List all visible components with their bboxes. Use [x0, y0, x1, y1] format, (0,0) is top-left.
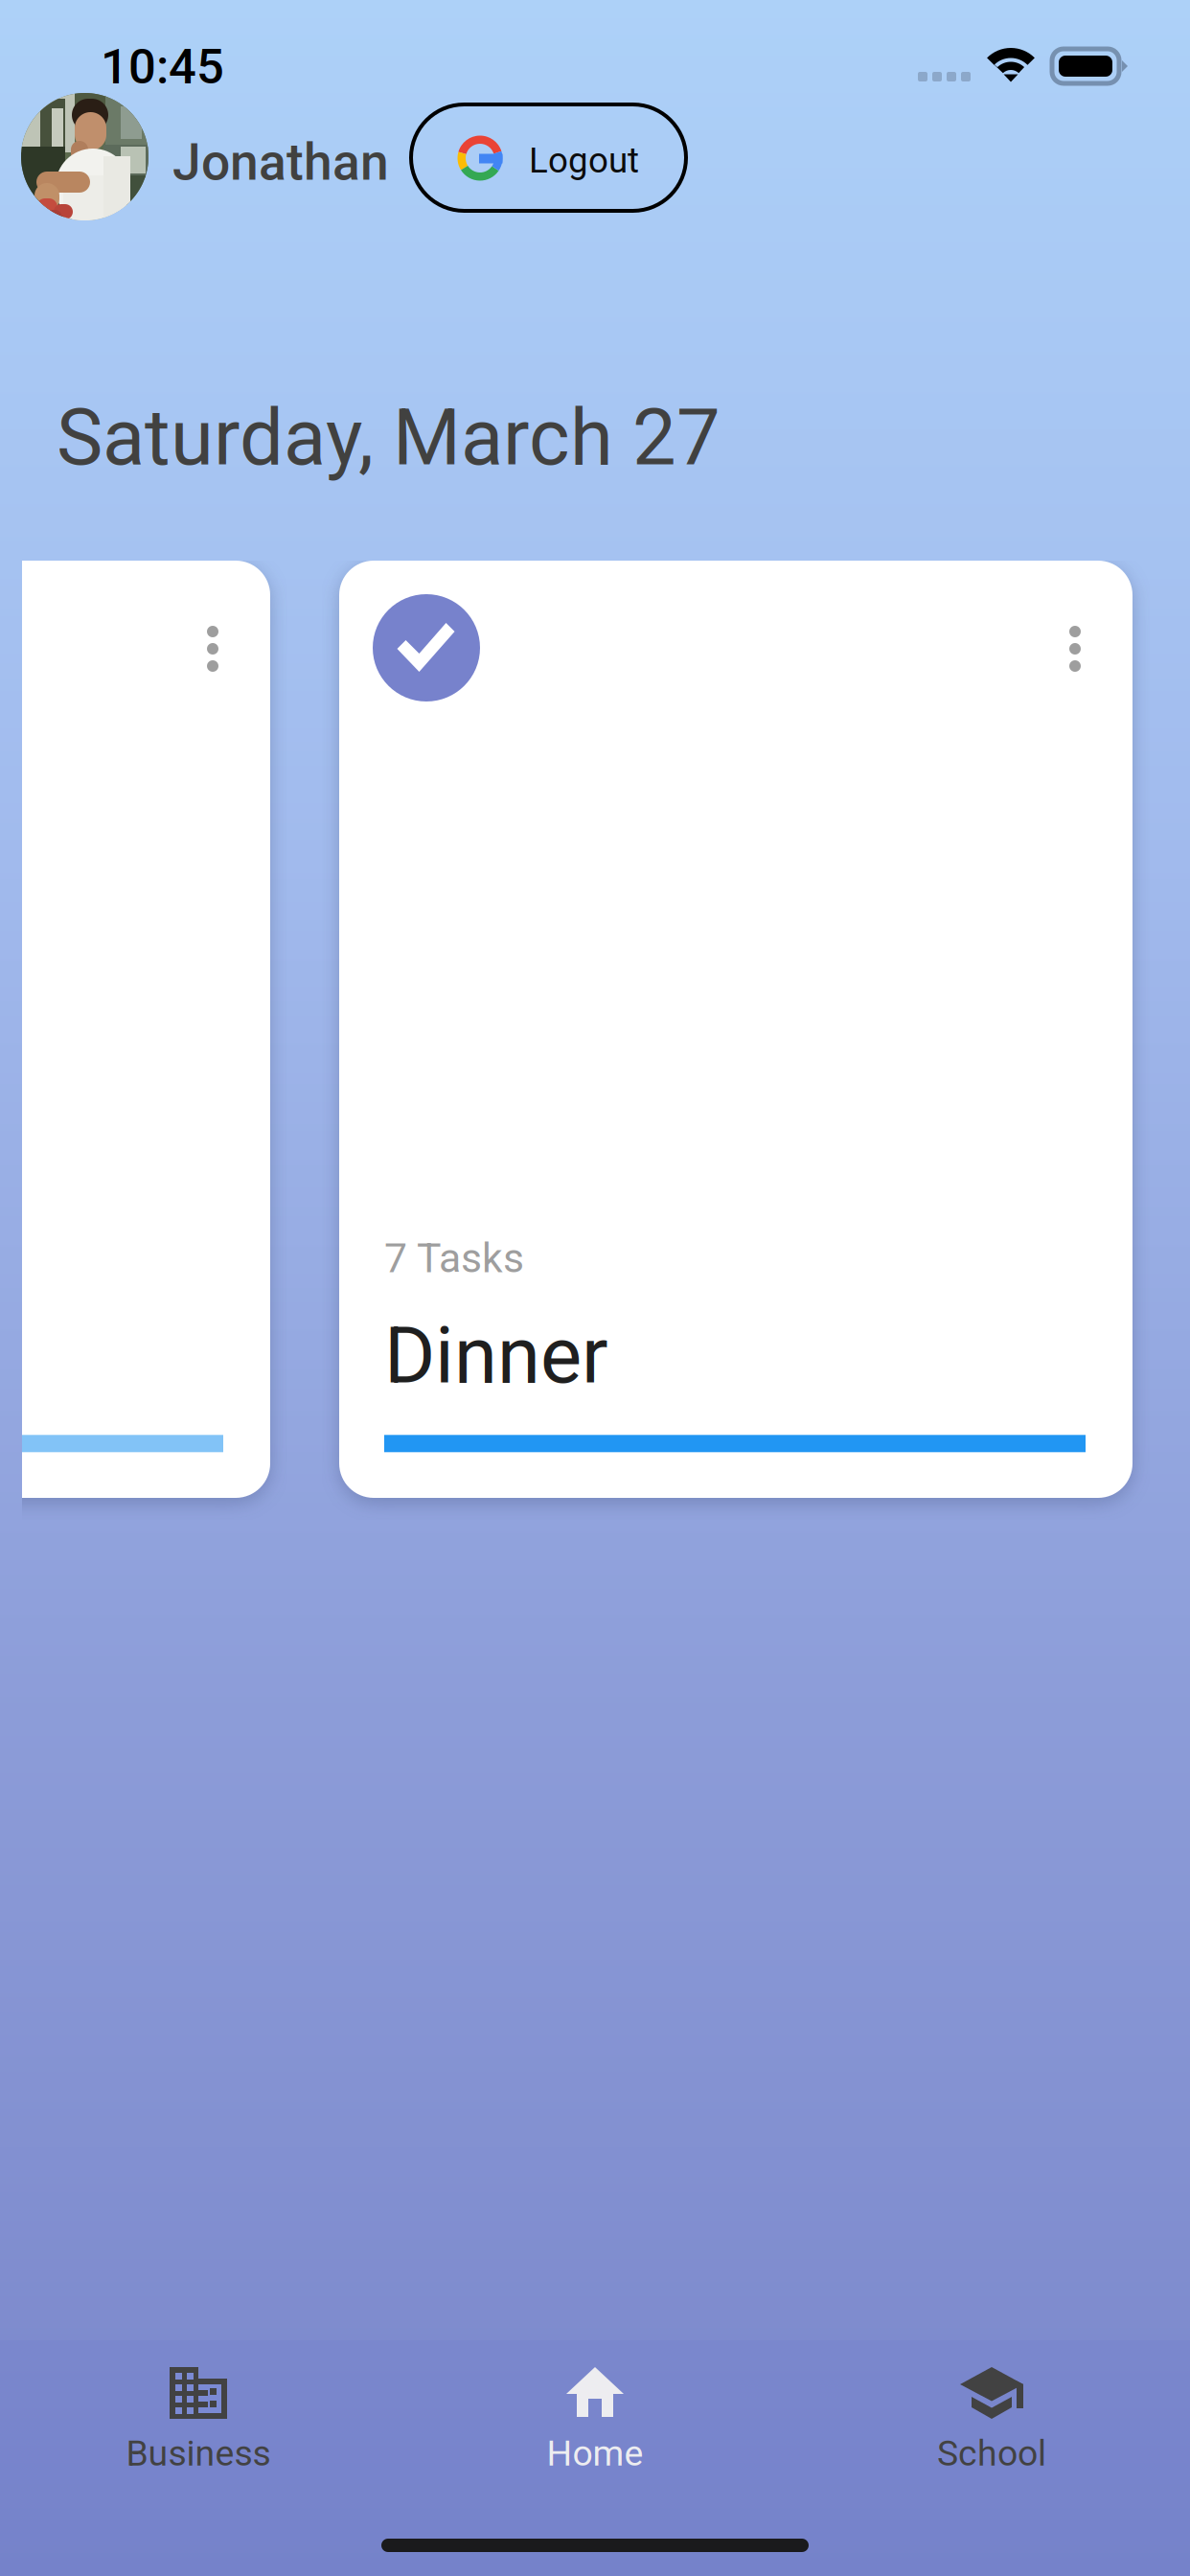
staticText: 10:45	[101, 38, 224, 95]
staticText: Logout	[529, 140, 639, 181]
staticText: School	[937, 2432, 1046, 2474]
staticText: Dinner	[384, 1310, 608, 1401]
button[interactable]: Card options	[1046, 609, 1104, 689]
staticText: Business	[126, 2432, 271, 2474]
button[interactable]: Home	[397, 2367, 793, 2474]
button[interactable]: Business	[0, 2367, 397, 2474]
button[interactable]: Card options	[184, 609, 241, 689]
staticText: Saturday, March 27	[57, 392, 721, 483]
staticText: Jonathan	[172, 132, 389, 192]
staticText: 7 Tasks	[384, 1234, 524, 1282]
button[interactable]: Logout	[411, 104, 686, 211]
button[interactable]: School	[793, 2367, 1190, 2474]
staticText: Home	[547, 2432, 643, 2474]
